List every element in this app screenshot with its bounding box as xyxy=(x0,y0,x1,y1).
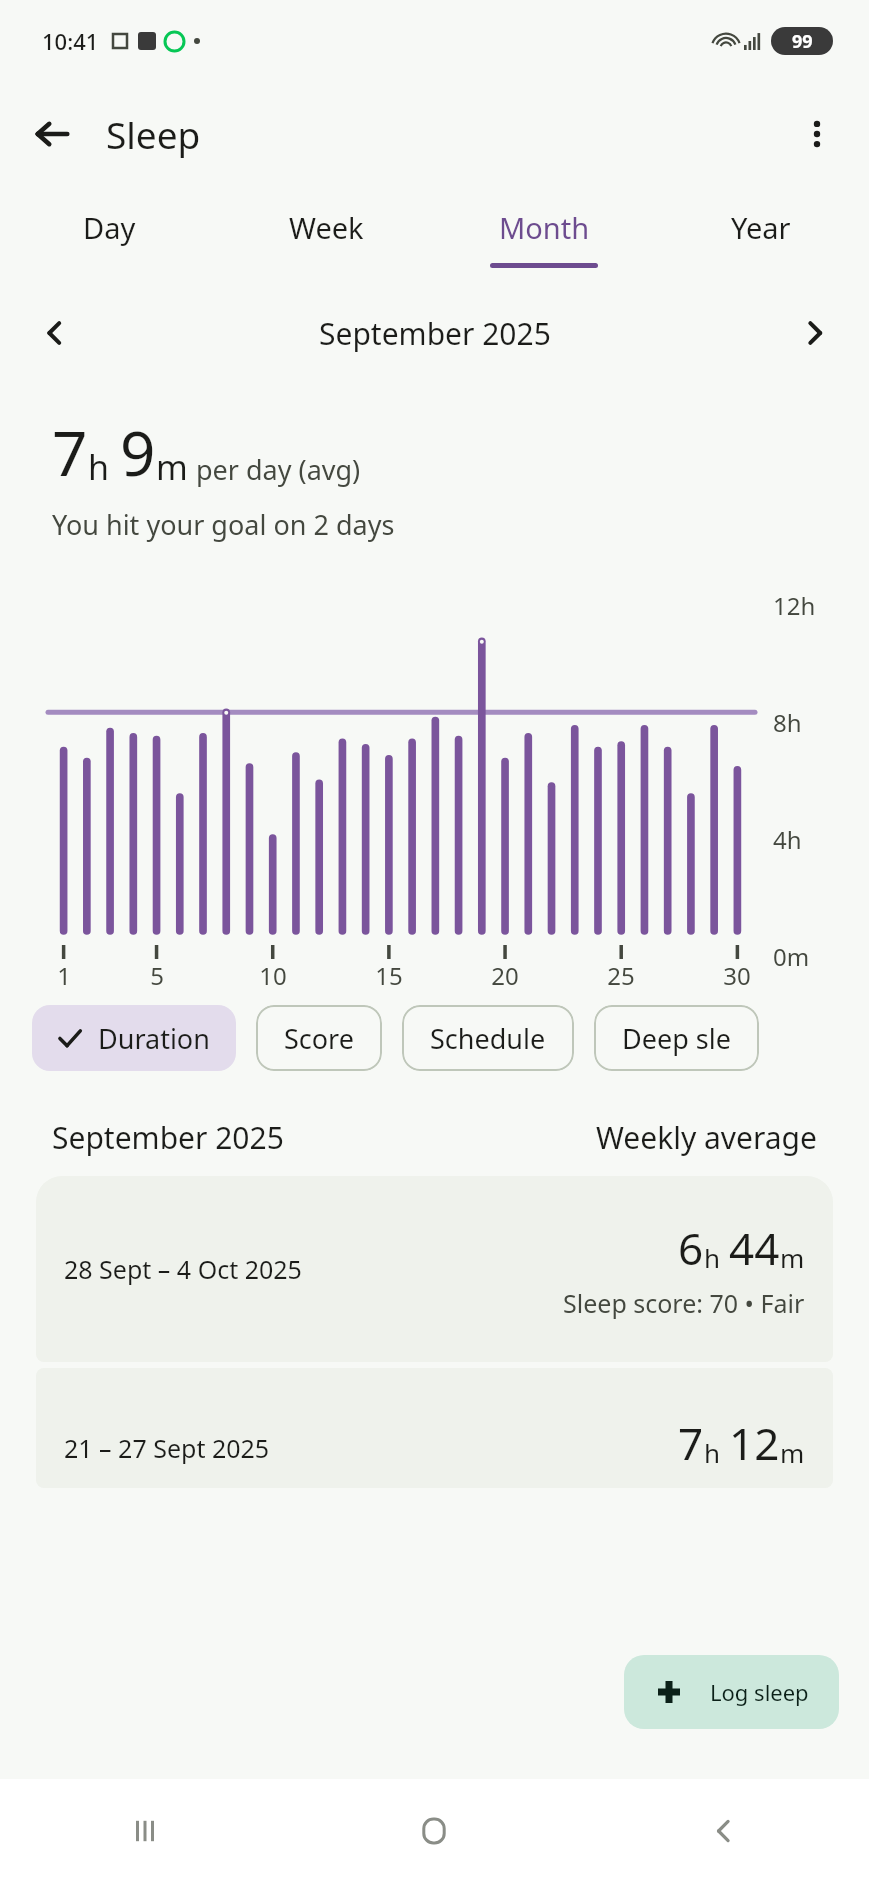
staticText: Weekly average xyxy=(596,1117,817,1158)
button[interactable]: Score xyxy=(256,1005,382,1071)
staticText: m xyxy=(156,444,188,490)
button[interactable]: Next month xyxy=(789,307,841,359)
staticText: Year xyxy=(731,208,791,247)
button[interactable]: Recents xyxy=(0,1779,289,1883)
staticText: Schedule xyxy=(430,1020,546,1057)
staticText: 12h xyxy=(773,589,816,622)
staticText: Deep sle xyxy=(622,1020,731,1057)
staticText: 7 xyxy=(52,410,88,494)
staticText: Log sleep xyxy=(710,1677,809,1707)
staticText: h xyxy=(704,1435,721,1470)
staticText: 28 Sept – 4 Oct 2025 xyxy=(64,1252,302,1286)
staticText: September 2025 xyxy=(52,1117,284,1158)
button[interactable]: Month xyxy=(435,186,652,290)
staticText: 5 xyxy=(150,959,164,992)
staticText: 10 xyxy=(259,959,287,992)
button[interactable]: 28 Sept – 4 Oct 2025 xyxy=(36,1176,833,1362)
staticText: 4h xyxy=(773,823,802,856)
staticText: 6 xyxy=(678,1218,704,1278)
staticText: 7 xyxy=(678,1413,704,1473)
staticText: September 2025 xyxy=(319,313,551,354)
staticText: per day (avg) xyxy=(196,451,361,488)
staticText: m xyxy=(780,1240,805,1275)
staticText: Day xyxy=(83,208,136,247)
staticText: 25 xyxy=(607,959,635,992)
staticText: 99 xyxy=(792,29,813,54)
staticText: Duration xyxy=(98,1020,210,1057)
staticText: Sleep score: 70 • Fair xyxy=(563,1286,805,1320)
staticText: Score xyxy=(284,1020,354,1057)
button[interactable]: Log sleep xyxy=(624,1655,839,1729)
staticText: Month xyxy=(499,208,590,247)
staticText: Week xyxy=(289,208,364,247)
staticText: m xyxy=(780,1435,805,1470)
staticText: 12 xyxy=(729,1413,780,1473)
staticText: 1 xyxy=(57,959,71,992)
staticText: 9 xyxy=(120,410,156,494)
staticText: Sleep xyxy=(106,109,201,159)
button[interactable]: Deep sle xyxy=(594,1005,759,1071)
staticText: 20 xyxy=(491,959,519,992)
button[interactable]: Back xyxy=(24,106,80,162)
button[interactable]: Day xyxy=(0,186,218,290)
staticText: 44 xyxy=(729,1218,780,1278)
staticText: h xyxy=(88,444,110,490)
button[interactable]: Back xyxy=(579,1779,869,1883)
staticText: 15 xyxy=(375,959,403,992)
staticText: 21 – 27 Sept 2025 xyxy=(64,1431,270,1465)
button[interactable]: Previous month xyxy=(28,307,80,359)
staticText: 8h xyxy=(773,706,802,739)
staticText: 0m xyxy=(773,940,810,973)
button[interactable]: Year xyxy=(652,186,869,290)
staticText: You hit your goal on 2 days xyxy=(52,506,395,543)
button[interactable]: 21 – 27 Sept 2025 xyxy=(36,1368,833,1488)
button[interactable]: Duration xyxy=(32,1005,236,1071)
button[interactable]: Week xyxy=(218,186,435,290)
button[interactable]: Home xyxy=(289,1779,579,1883)
staticText: 30 xyxy=(723,959,751,992)
staticText: h xyxy=(704,1240,721,1275)
staticText: 10:41 xyxy=(42,26,99,56)
button[interactable]: Schedule xyxy=(402,1005,574,1071)
button[interactable]: More options xyxy=(789,106,845,162)
